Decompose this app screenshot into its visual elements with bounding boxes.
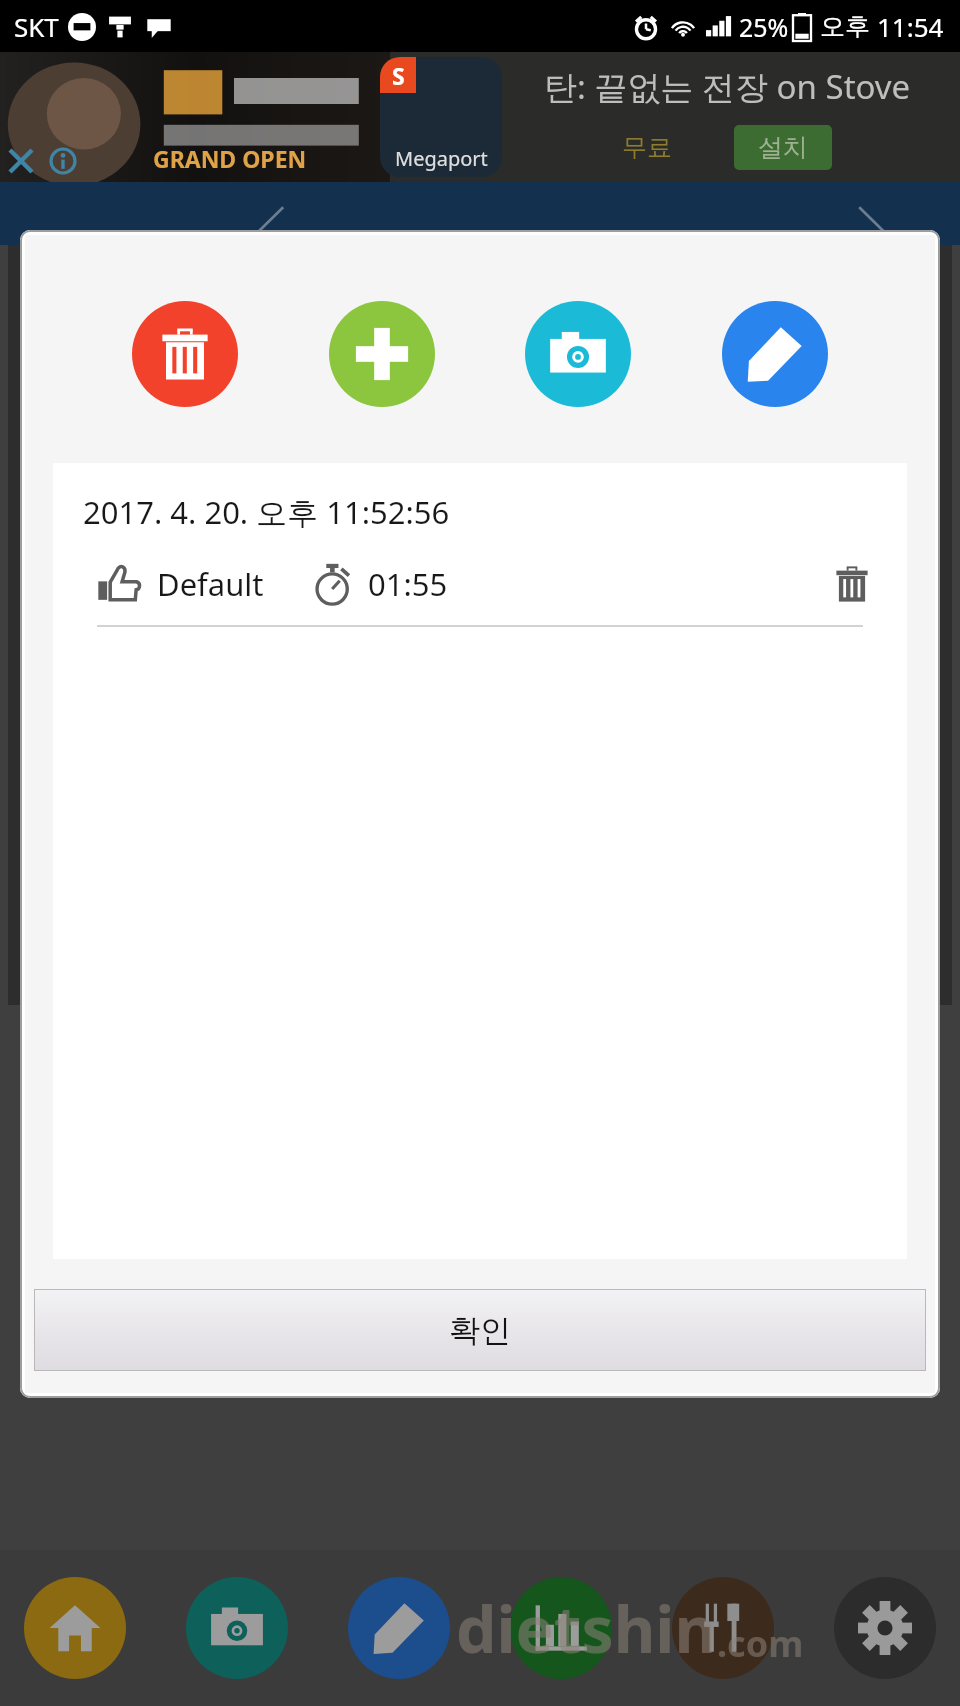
staticText: GRAND OPEN (153, 143, 307, 174)
button[interactable]: Default (97, 555, 877, 613)
button[interactable]: 설치 (758, 132, 808, 163)
button[interactable]: Delete all (132, 301, 238, 407)
staticText: 25% (739, 10, 789, 44)
staticText: dietshin (456, 1585, 717, 1672)
staticText: 오후 (820, 11, 870, 42)
button[interactable]: Edit (348, 1577, 450, 1679)
staticText: 11:54 (877, 9, 944, 44)
button[interactable]: Home (24, 1577, 126, 1679)
staticText: SKT (14, 9, 59, 44)
button[interactable]: Ad info (42, 140, 84, 182)
staticText: 2017. 4. 20. 오후 11:52:56 (83, 491, 450, 533)
staticText: 설치 (758, 132, 808, 163)
button[interactable]: Settings (834, 1577, 936, 1679)
staticText: S (392, 60, 405, 91)
button[interactable]: Delete entry (827, 559, 877, 609)
staticText: .com (717, 1619, 804, 1668)
button[interactable]: Add (329, 301, 435, 407)
staticText: 01:55 (368, 563, 448, 605)
button[interactable]: Close ad (0, 140, 42, 182)
button[interactable]: Edit (722, 301, 828, 407)
button[interactable]: Stats (510, 1577, 612, 1679)
button[interactable]: Camera (525, 301, 631, 407)
button[interactable]: 확인 (34, 1289, 926, 1371)
staticText: 확인 (449, 1311, 511, 1350)
staticText: Megaport (395, 145, 488, 172)
button[interactable]: Food (672, 1577, 774, 1679)
button[interactable]: Close ad (0, 52, 960, 182)
staticText: 무료 (622, 132, 672, 163)
staticText: Default (157, 563, 264, 605)
staticText: 탄: 끝없는 전장 on Stove (544, 64, 911, 109)
button[interactable]: Camera (186, 1577, 288, 1679)
